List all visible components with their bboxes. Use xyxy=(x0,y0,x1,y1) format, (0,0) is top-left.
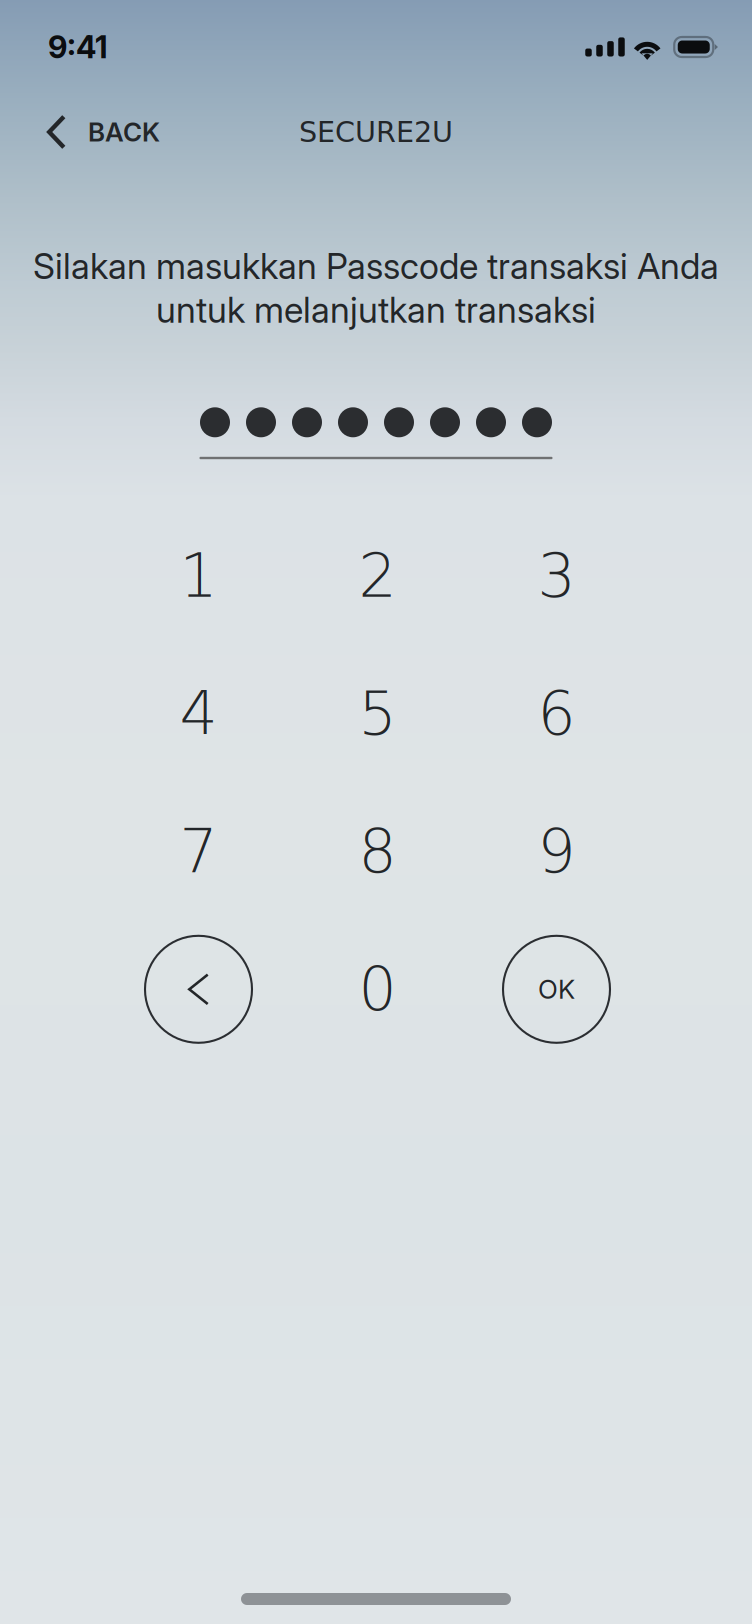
staticText: 5 xyxy=(358,679,396,749)
button[interactable]: 4 xyxy=(109,645,288,783)
staticText: 8 xyxy=(358,817,396,886)
button[interactable]: 3 xyxy=(467,507,646,645)
button[interactable]: 7 xyxy=(109,783,288,920)
staticText: 3 xyxy=(537,541,575,611)
button[interactable]: 1 xyxy=(109,507,288,645)
button[interactable]: 9 xyxy=(467,783,646,920)
button[interactable]: BACK xyxy=(38,101,169,162)
button[interactable]: Delete xyxy=(109,920,288,1058)
staticText: BACK xyxy=(88,116,160,148)
button[interactable]: 2 xyxy=(288,507,467,645)
staticText: 9:41 xyxy=(48,28,108,65)
button[interactable]: 0 xyxy=(288,920,467,1058)
button[interactable]: OK xyxy=(467,920,646,1058)
staticText: 2 xyxy=(358,541,396,611)
button[interactable]: 6 xyxy=(467,645,646,783)
staticText: 9 xyxy=(537,817,575,886)
staticText: 4 xyxy=(179,679,217,749)
button[interactable]: 8 xyxy=(288,783,467,920)
staticText: OK xyxy=(538,974,575,1005)
staticText: SECURE2U xyxy=(299,115,453,149)
staticText: 1 xyxy=(179,541,217,611)
staticText: Silakan masukkan Passcode transaksi Anda xyxy=(33,245,719,288)
staticText: 7 xyxy=(179,817,217,886)
staticText: untuk melanjutkan transaksi xyxy=(156,289,596,331)
staticText: 6 xyxy=(537,679,575,749)
button[interactable]: 5 xyxy=(288,645,467,783)
staticText: 0 xyxy=(358,954,396,1024)
